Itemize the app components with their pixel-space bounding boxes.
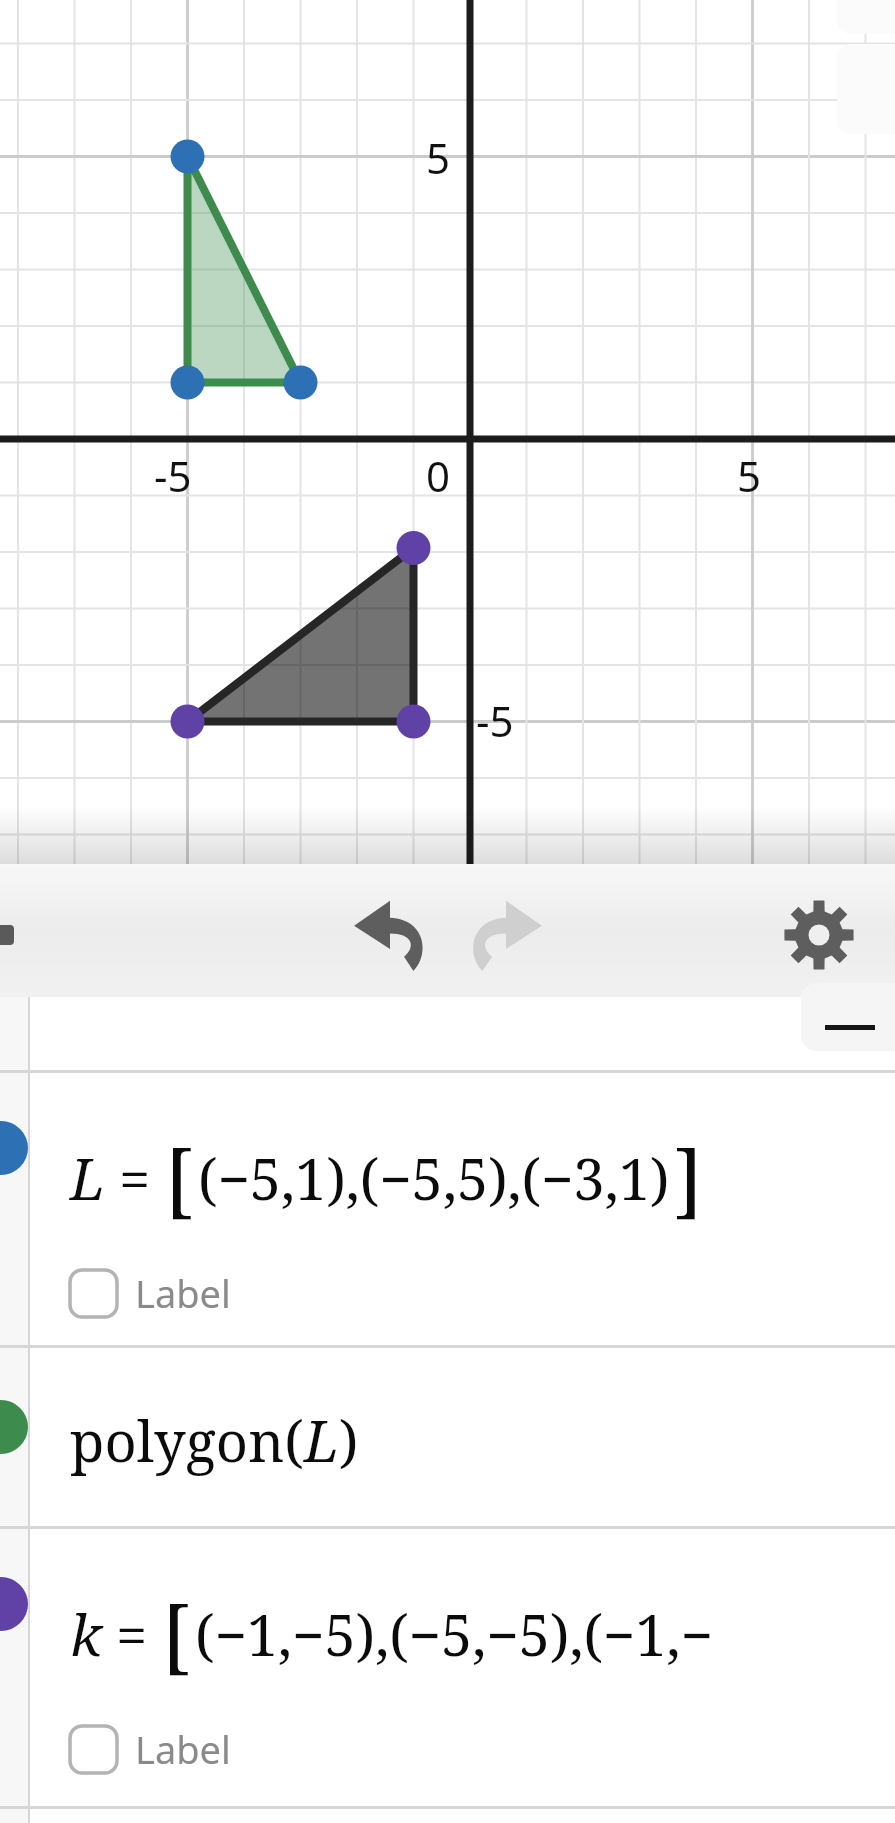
button[interactable]: L xyxy=(0,1073,895,1345)
staticText: [ xyxy=(162,1579,191,1688)
staticText: Label xyxy=(135,1723,231,1775)
staticText: (−5,1),(−5,5),(−3,1) xyxy=(198,1140,670,1216)
button[interactable]: Label xyxy=(70,1716,231,1782)
staticText: 0 xyxy=(426,447,451,504)
staticText: L xyxy=(70,1140,105,1216)
staticText: = xyxy=(116,1596,148,1672)
staticText: ) xyxy=(339,1402,359,1478)
button[interactable]: k xyxy=(0,1529,895,1806)
button[interactable]: polygon( xyxy=(0,1348,895,1526)
button[interactable]: Undo xyxy=(340,885,440,985)
staticText: polygon( xyxy=(70,1402,304,1478)
staticText: (−1,−5),(−5,−5),(−1,− xyxy=(195,1596,713,1672)
staticText: Label xyxy=(135,1267,231,1319)
staticText: ] xyxy=(674,1123,703,1232)
button[interactable]: Keyboard xyxy=(0,925,14,945)
button[interactable]: Label xyxy=(70,1260,231,1326)
button[interactable]: Collapse xyxy=(801,983,895,1051)
staticText: -5 xyxy=(154,447,192,504)
staticText: [ xyxy=(165,1123,194,1232)
button[interactable]: Redo xyxy=(456,885,556,985)
staticText: 5 xyxy=(737,447,762,504)
staticText: = xyxy=(119,1140,151,1216)
staticText: -5 xyxy=(476,692,514,749)
button[interactable]: Settings xyxy=(769,885,869,985)
staticText: 5 xyxy=(426,129,451,186)
staticText: k xyxy=(70,1596,102,1672)
staticText: L xyxy=(304,1402,339,1478)
